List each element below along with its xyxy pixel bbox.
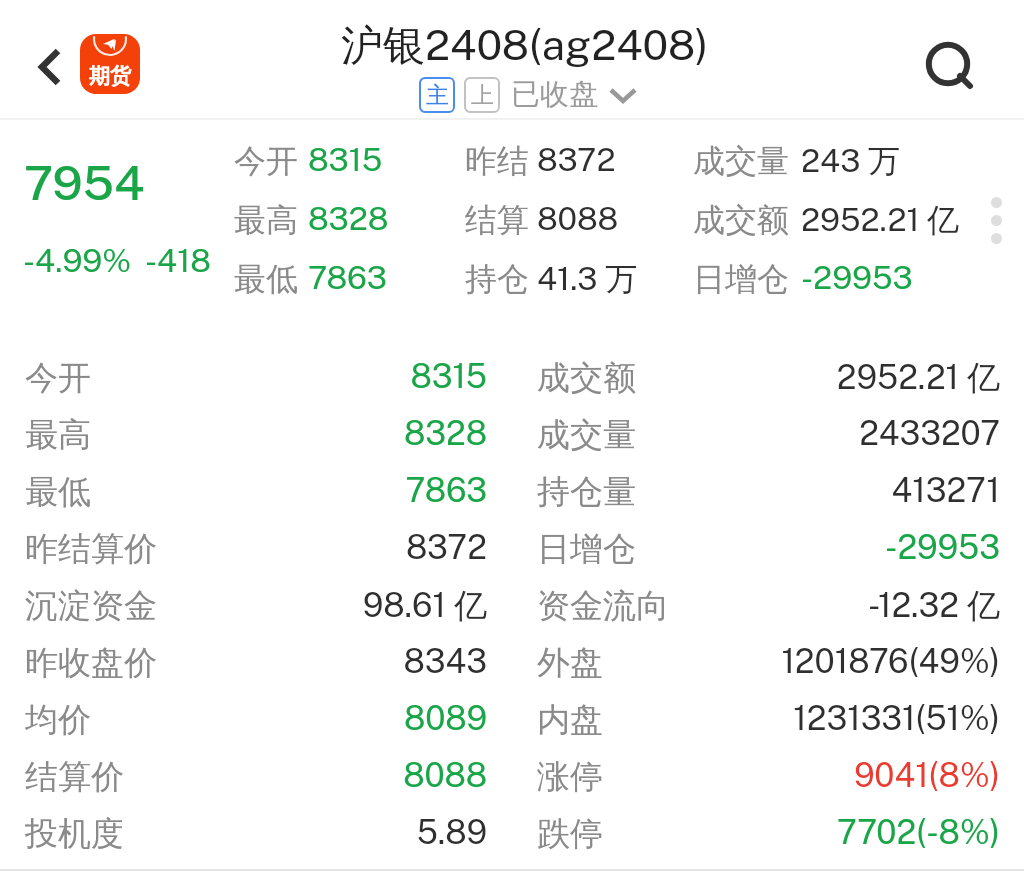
button[interactable]: 均价: [0, 699, 1024, 756]
staticText: 成交额: [537, 357, 636, 399]
button[interactable]: 最高: [0, 414, 1024, 471]
staticText: 成交量: [693, 141, 789, 181]
staticText: 均价: [25, 699, 91, 741]
staticText: 上: [471, 81, 494, 110]
staticText: 日增仓: [693, 259, 789, 299]
staticText: 8372: [0, 528, 487, 567]
staticText: 最低: [25, 471, 91, 513]
button[interactable]: 昨结算价: [0, 528, 1024, 585]
staticText: 沪银2408(ag2408): [341, 20, 709, 73]
staticText: 2952.21 亿: [801, 200, 960, 240]
button[interactable]: More options: [991, 197, 1002, 244]
staticText: 1231331(51%): [0, 699, 1000, 738]
staticText: 日增仓: [537, 528, 636, 570]
staticText: -4.99%: [23, 242, 132, 280]
staticText: 持仓: [465, 259, 529, 299]
staticText: 结算: [465, 200, 529, 240]
staticText: 投机度: [25, 813, 124, 855]
staticText: 8328: [308, 200, 389, 238]
button[interactable]: Back: [10, 22, 86, 98]
staticText: 涨停: [537, 756, 603, 798]
staticText: 413271: [0, 471, 1000, 510]
staticText: 昨结: [465, 141, 529, 181]
button[interactable]: 投机度: [0, 813, 1024, 870]
staticText: 成交量: [537, 414, 636, 456]
staticText: 5.89: [0, 813, 487, 852]
button[interactable]: 结算价: [0, 756, 1024, 813]
staticText: 2433207: [0, 414, 1000, 453]
staticText: 8088: [537, 200, 619, 238]
staticText: 98.61 亿: [0, 585, 487, 627]
staticText: 已收盘: [511, 76, 598, 113]
staticText: -29953: [0, 528, 1000, 567]
button[interactable]: 最低: [0, 471, 1024, 528]
staticText: 7863: [308, 259, 387, 297]
staticText: 243 万: [801, 141, 901, 181]
staticText: 主: [426, 81, 449, 110]
staticText: 持仓量: [537, 471, 636, 513]
staticText: 1201876(49%): [0, 642, 1000, 681]
staticText: 最高: [234, 200, 298, 240]
staticText: 8372: [537, 141, 616, 179]
staticText: 沉淀资金: [25, 585, 157, 627]
staticText: 8328: [0, 414, 487, 453]
staticText: -29953: [801, 259, 913, 297]
staticText: 8315: [308, 141, 383, 179]
button[interactable]: 沉淀资金: [0, 585, 1024, 642]
staticText: 8089: [0, 699, 487, 738]
staticText: 期货: [89, 63, 131, 89]
staticText: 7702(-8%): [0, 813, 1000, 852]
staticText: 成交额: [693, 200, 789, 240]
staticText: 资金流向: [537, 585, 669, 627]
staticText: 41.3 万: [537, 259, 638, 299]
staticText: 跌停: [537, 813, 603, 855]
staticText: 最低: [234, 259, 298, 299]
button[interactable]: Search: [908, 24, 988, 104]
staticText: 昨收盘价: [25, 642, 157, 684]
staticText: 7954: [24, 154, 145, 210]
button[interactable]: 昨收盘价: [0, 642, 1024, 699]
staticText: 最高: [25, 414, 91, 456]
staticText: 8088: [0, 756, 487, 795]
staticText: 昨结算价: [25, 528, 157, 570]
staticText: 今开: [25, 357, 91, 399]
staticText: 2952.21 亿: [0, 357, 1000, 399]
button[interactable]: Futures app icon: [80, 34, 140, 94]
staticText: 8315: [0, 357, 487, 396]
staticText: 外盘: [537, 642, 603, 684]
button[interactable]: 今开: [0, 357, 1024, 414]
staticText: 内盘: [537, 699, 603, 741]
staticText: 8343: [0, 642, 487, 681]
staticText: -12.32 亿: [0, 585, 1000, 627]
staticText: 7863: [0, 471, 487, 510]
staticText: -418: [145, 242, 211, 280]
staticText: 结算价: [25, 756, 124, 798]
staticText: 今开: [234, 141, 298, 181]
staticText: 9041(8%): [0, 756, 1000, 795]
